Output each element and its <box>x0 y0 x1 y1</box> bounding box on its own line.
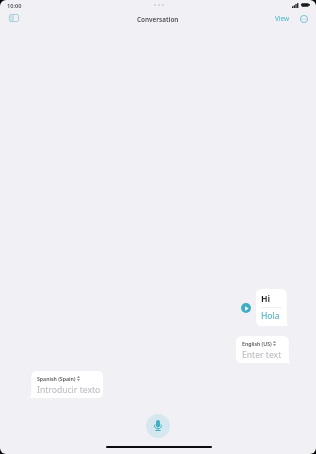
button[interactable]: More options <box>297 12 310 25</box>
staticText: 10:00 <box>7 2 22 10</box>
button[interactable]: English (US) <box>236 336 291 363</box>
button[interactable]: View <box>275 14 289 23</box>
staticText: English (US) <box>242 340 272 347</box>
staticText: Conversation <box>137 15 179 24</box>
staticText: Introducir texto <box>37 384 101 396</box>
staticText: Enter text <box>242 349 282 361</box>
button[interactable]: Record <box>146 414 170 438</box>
staticText: Spanish (Spain) <box>37 375 76 382</box>
button[interactable]: Hi <box>256 289 289 326</box>
staticText: Hola <box>261 310 280 322</box>
button[interactable]: Spanish (Spain) <box>29 371 103 398</box>
button[interactable]: Play <box>241 303 251 313</box>
staticText: Hi <box>261 293 271 305</box>
button[interactable]: Show sidebar <box>5 11 23 25</box>
staticText: View <box>275 14 289 23</box>
